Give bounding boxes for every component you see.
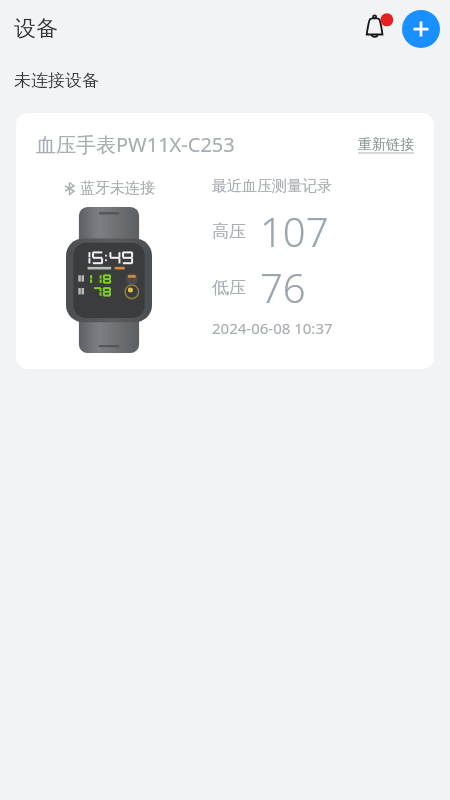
staticText: 高压 — [212, 221, 246, 242]
staticText: 低压 — [212, 277, 246, 298]
staticText: 重新链接 — [358, 136, 414, 154]
button[interactable]: Add device — [402, 10, 440, 48]
staticText: 最近血压测量记录 — [212, 177, 332, 196]
staticText: 107 — [260, 204, 329, 258]
staticText: 2024-06-08 10:37 — [212, 318, 333, 338]
staticText: 血压手表PW11X-C253 — [36, 131, 235, 158]
button[interactable]: 血压手表PW11X-C253 — [16, 113, 434, 369]
button[interactable]: 重新链接 — [356, 134, 416, 156]
button[interactable]: Notifications, 9 unread — [358, 9, 398, 49]
staticText: 设备 — [14, 15, 58, 43]
staticText: 蓝牙未连接 — [80, 179, 155, 198]
staticText: 76 — [260, 260, 306, 314]
staticText: 未连接设备 — [14, 70, 99, 91]
